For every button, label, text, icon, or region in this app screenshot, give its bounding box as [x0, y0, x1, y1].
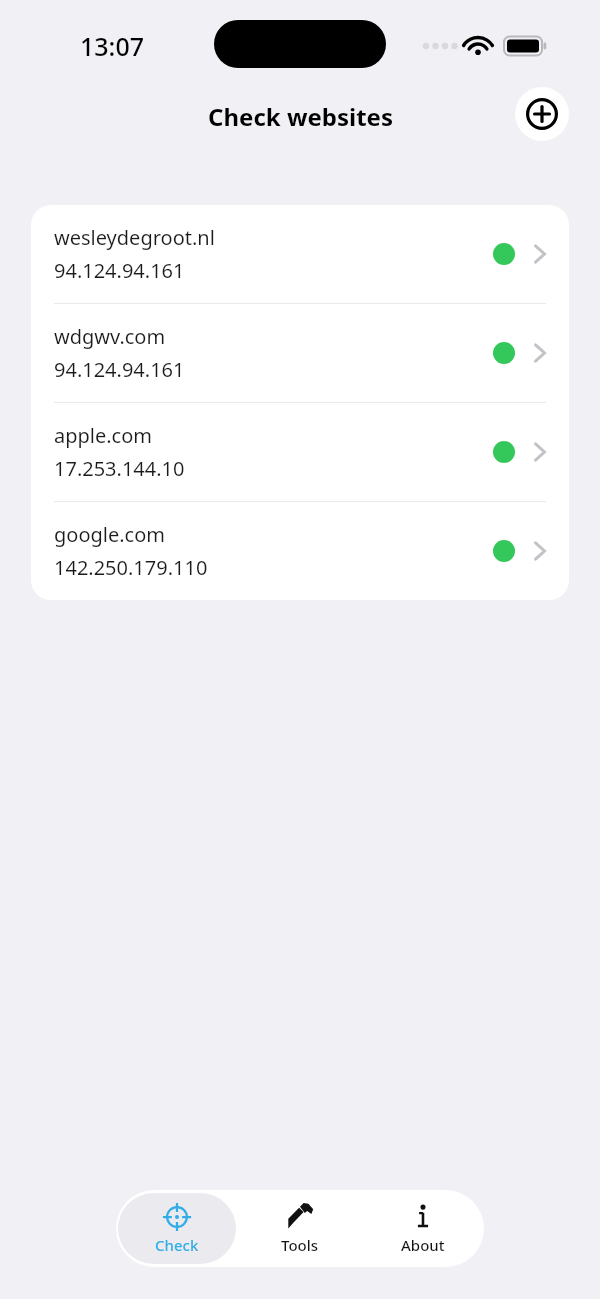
staticText: About: [401, 1235, 445, 1255]
staticText: apple.com: [54, 422, 153, 449]
staticText: Check websites: [208, 100, 393, 133]
staticText: Check: [155, 1235, 199, 1255]
button[interactable]: wesleydegroot.nl: [31, 205, 569, 303]
staticText: 13:07: [80, 29, 145, 63]
button[interactable]: Tools: [240, 1193, 359, 1264]
staticText: Tools: [281, 1235, 319, 1255]
staticText: wdgwv.com: [54, 323, 166, 350]
staticText: 94.124.94.161: [54, 257, 185, 284]
staticText: 17.253.144.10: [54, 455, 185, 482]
staticText: wesleydegroot.nl: [54, 224, 215, 251]
button[interactable]: wdgwv.com: [31, 304, 569, 402]
staticText: 142.250.179.110: [54, 554, 208, 581]
staticText: google.com: [54, 521, 165, 548]
button[interactable]: Check: [118, 1193, 236, 1264]
button[interactable]: google.com: [31, 502, 569, 600]
button[interactable]: Add website: [515, 87, 569, 141]
button[interactable]: apple.com: [31, 403, 569, 501]
staticText: 94.124.94.161: [54, 356, 185, 383]
button[interactable]: About: [363, 1193, 482, 1264]
